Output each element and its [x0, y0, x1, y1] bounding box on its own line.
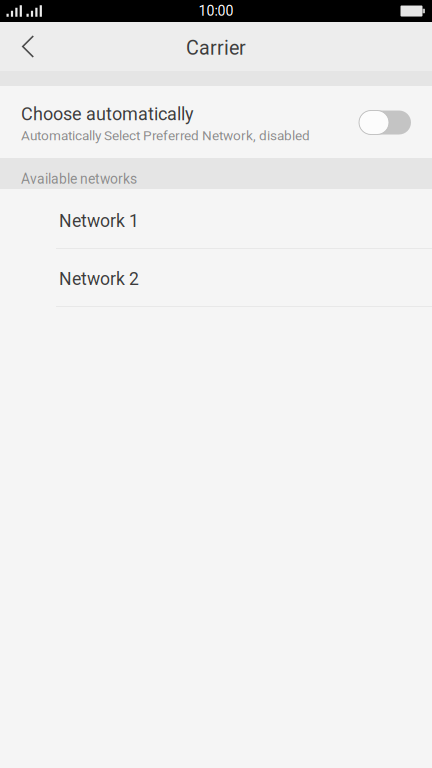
- staticText: Choose automatically: [21, 103, 194, 125]
- button[interactable]: Back: [0, 22, 56, 71]
- button[interactable]: Network 1: [0, 189, 432, 249]
- staticText: Carrier: [186, 36, 246, 59]
- staticText: Automatically Select Preferred Network, …: [21, 128, 310, 143]
- staticText: Network 1: [59, 211, 139, 231]
- staticText: Network 2: [59, 269, 139, 289]
- staticText: 10:00: [198, 3, 233, 19]
- staticText: Available networks: [21, 171, 137, 187]
- button[interactable]: Network 2: [0, 249, 432, 307]
- button[interactable]: Choose automatically: [0, 86, 432, 158]
- button[interactable]: Choose automatically, off: [359, 109, 411, 134]
